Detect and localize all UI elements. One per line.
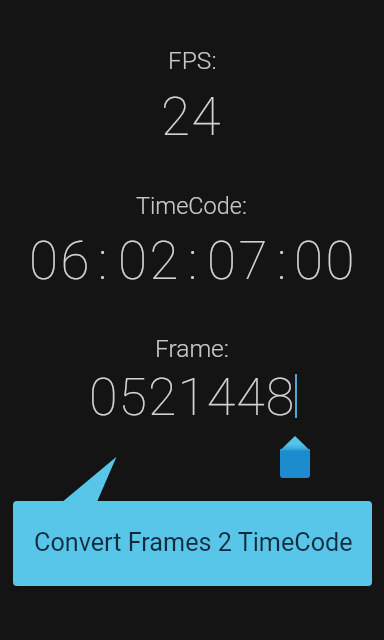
staticText: Frame: [155, 334, 229, 363]
button[interactable]: Convert Frames 2 TimeCode [13, 501, 372, 586]
staticText: 0521448 [89, 367, 296, 428]
staticText: Convert Frames 2 TimeCode [34, 528, 353, 558]
staticText: 07 [207, 230, 271, 292]
staticText: : [98, 230, 110, 292]
staticText: : [188, 230, 200, 292]
button[interactable]: Frame value 0521448 [24, 370, 360, 422]
button[interactable]: TimeCode value 06:02:07:00 [24, 232, 360, 284]
staticText: 02 [118, 230, 182, 292]
staticText: : [277, 230, 289, 292]
staticText: TimeCode: [136, 192, 247, 220]
button[interactable]: Text cursor handle [280, 436, 310, 478]
staticText: 00 [294, 230, 358, 292]
staticText: FPS: [168, 46, 217, 75]
button[interactable]: FPS value 24 [24, 88, 360, 138]
staticText: 24 [161, 86, 223, 148]
staticText: 06 [29, 230, 93, 292]
